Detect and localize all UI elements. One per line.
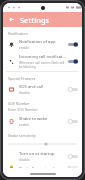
button[interactable]: Notification of app: [3, 37, 82, 52]
button[interactable]: Turn on at startup: [3, 149, 82, 164]
button[interactable]: Back: [7, 15, 16, 24]
button[interactable]: Off: [68, 119, 78, 124]
staticText: Settings: [20, 15, 50, 25]
staticText: disable: [19, 158, 30, 162]
staticText: Special Features: [8, 76, 36, 81]
staticText: Incoming call notification: [19, 54, 66, 60]
button[interactable]: Enter SOS Number: [3, 107, 82, 114]
staticText: Whenever call comes flash will be blinki…: [19, 61, 66, 69]
staticText: Notification: [8, 31, 28, 36]
staticText: Turn on at startup: [19, 151, 55, 157]
staticText: enable: [19, 123, 30, 127]
staticText: disable: [19, 91, 30, 95]
button[interactable]: Incoming call notification: [3, 52, 82, 71]
staticText: Enter SOS Number: [8, 107, 38, 112]
button[interactable]: Off: [68, 166, 78, 168]
staticText: Shake sensitivity: [8, 133, 36, 138]
button[interactable]: Shake to wake: [3, 114, 82, 129]
staticText: Shake to wake: [19, 116, 48, 122]
button[interactable]: Big bulb as a torch: [3, 164, 82, 170]
button[interactable]: Off: [68, 87, 78, 92]
staticText: enable: [19, 46, 30, 50]
staticText: SOS Number: [8, 101, 30, 106]
staticText: Notification of app: [19, 39, 56, 45]
staticText: SOS and call: [19, 84, 44, 90]
button[interactable]: On: [68, 59, 78, 64]
button[interactable]: [3, 139, 82, 149]
staticText: Big bulb as a torch: [19, 166, 56, 168]
button[interactable]: Off: [68, 154, 78, 159]
button[interactable]: On: [68, 42, 78, 47]
button[interactable]: SOS and call: [3, 82, 82, 97]
